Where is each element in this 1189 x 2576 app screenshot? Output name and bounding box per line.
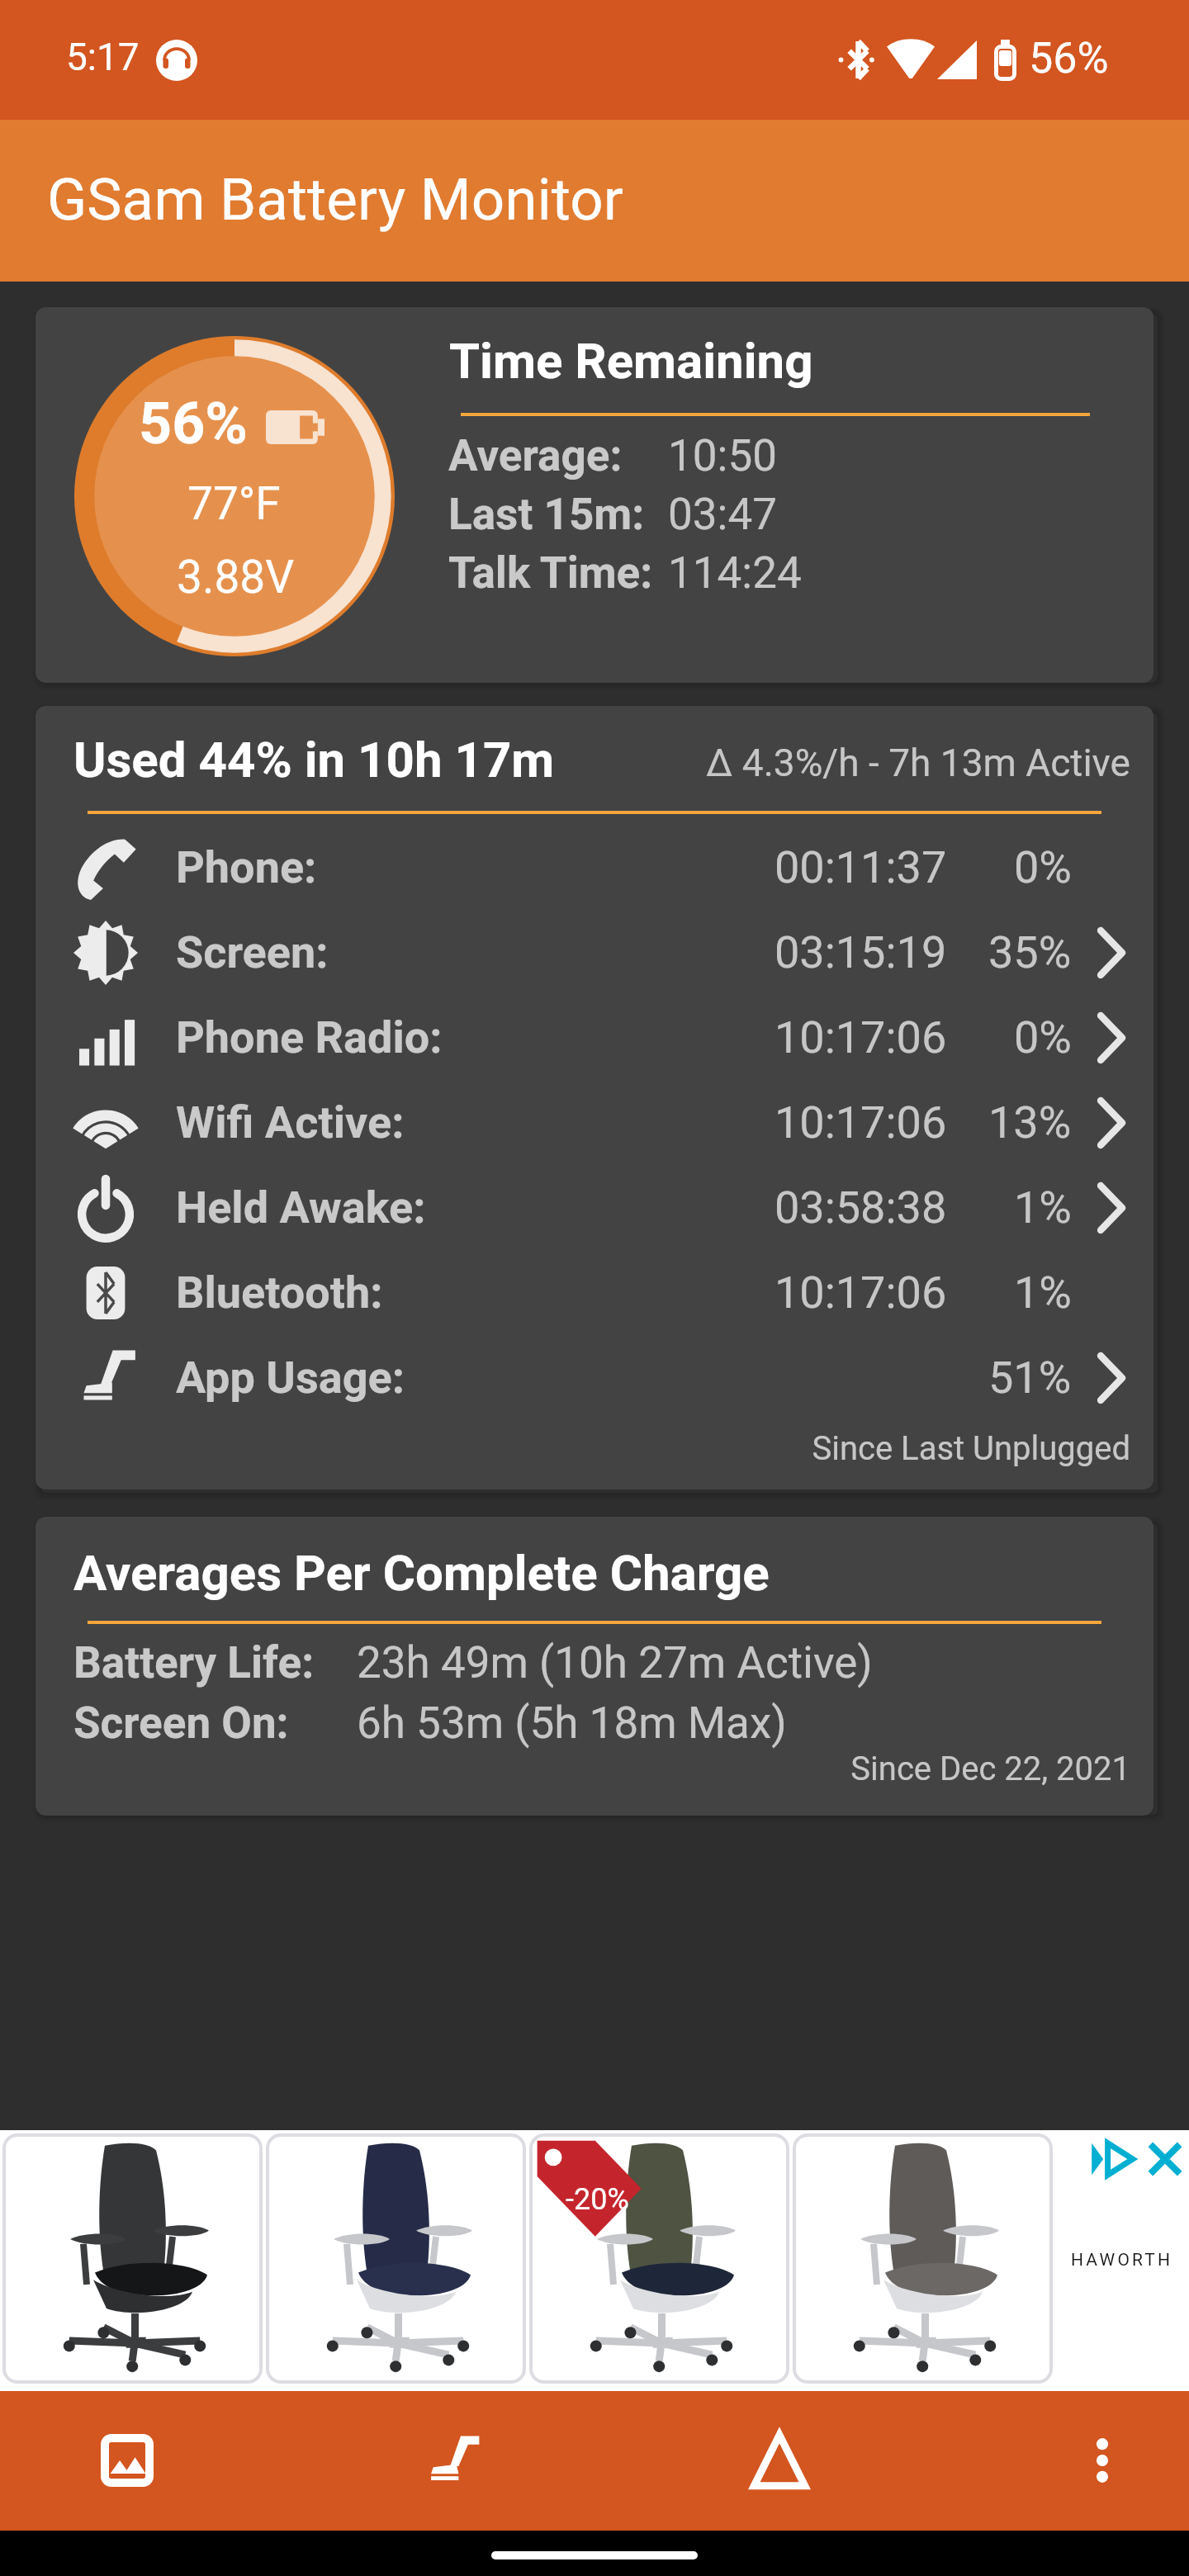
staticText: 114:24 [668,547,802,599]
staticText: Wifi Active: [176,1096,405,1148]
staticText: HAWORTH [1071,2250,1173,2271]
staticText: 6h 53m (5h 18m Max) [357,1698,787,1749]
staticText: Since Last Unplugged [73,1429,1130,1468]
staticText: Battery Life: [73,1637,357,1688]
staticText: Phone Radio: [176,1011,443,1063]
button[interactable]: Advertisement [4,2135,261,2382]
staticText: Bluetooth: [176,1267,383,1319]
staticText: 10:17:06 [775,1267,947,1319]
button[interactable]: GSam Battery Monitor [0,120,1189,282]
button[interactable]: Battery stats [710,2391,849,2531]
staticText: Screen: [176,926,329,978]
staticText: 23h 49m (10h 27m Active) [357,1637,873,1688]
staticText: Δ 4.3%/h - 7h 13m Active [706,741,1130,785]
button[interactable]: Bluetooth: [36,1250,1153,1335]
button[interactable]: Phone Radio: [36,995,1153,1080]
staticText: 1% [1014,1267,1072,1319]
staticText: 13% [988,1096,1072,1148]
staticText: 56% [1029,33,1109,83]
staticText: 0% [1014,841,1072,893]
staticText: Averages Per Complete Charge [73,1544,770,1602]
staticText: Used 44% in 10h 17m [73,731,555,788]
staticText: 3.88V [177,551,295,604]
button[interactable]: Advertisement [268,2135,524,2382]
staticText: 77°F [187,477,281,530]
staticText: 10:17:06 [775,1011,947,1063]
staticText: Time Remaining [449,332,813,390]
staticText: Phone: [176,841,317,893]
staticText: -20% [566,2182,629,2217]
staticText: 03:58:38 [775,1181,947,1234]
staticText: 56% [139,390,249,457]
staticText: GSam Battery Monitor [47,165,623,234]
button[interactable]: Advertisement [794,2135,1051,2382]
staticText: 5:17 [66,35,140,79]
button[interactable]: App Usage: [36,1335,1153,1420]
button[interactable]: Charts [58,2391,197,2531]
staticText: 10:17:06 [775,1096,947,1148]
staticText: 03:15:19 [775,926,947,978]
staticText: Screen On: [73,1698,357,1749]
button[interactable]: Time Remaining details [36,307,1153,683]
staticText: Since Dec 22, 2021 [73,1750,1130,1788]
staticText: 35% [988,926,1072,978]
staticText: Held Awake: [176,1181,426,1234]
staticText: Average: [448,430,668,481]
staticText: 51% [988,1352,1072,1404]
button[interactable]: Advertisement [531,2135,788,2382]
button[interactable]: Wifi Active: [36,1080,1153,1165]
staticText: 00:11:37 [775,841,947,893]
button[interactable]: Held Awake: [36,1165,1153,1250]
staticText: Last 15m: [448,489,668,540]
button[interactable]: Averages per complete charge [36,1517,1153,1816]
staticText: 0% [1014,1011,1072,1063]
staticText: App Usage: [176,1352,405,1404]
button[interactable]: Screen: [36,910,1153,995]
button[interactable]: More options [1033,2391,1172,2531]
button[interactable]: App Usage [384,2391,523,2531]
staticText: 03:47 [668,489,777,540]
button[interactable]: Phone: [36,825,1153,910]
staticText: Talk Time: [448,547,668,599]
staticText: 1% [1014,1181,1072,1234]
staticText: 10:50 [668,430,777,481]
